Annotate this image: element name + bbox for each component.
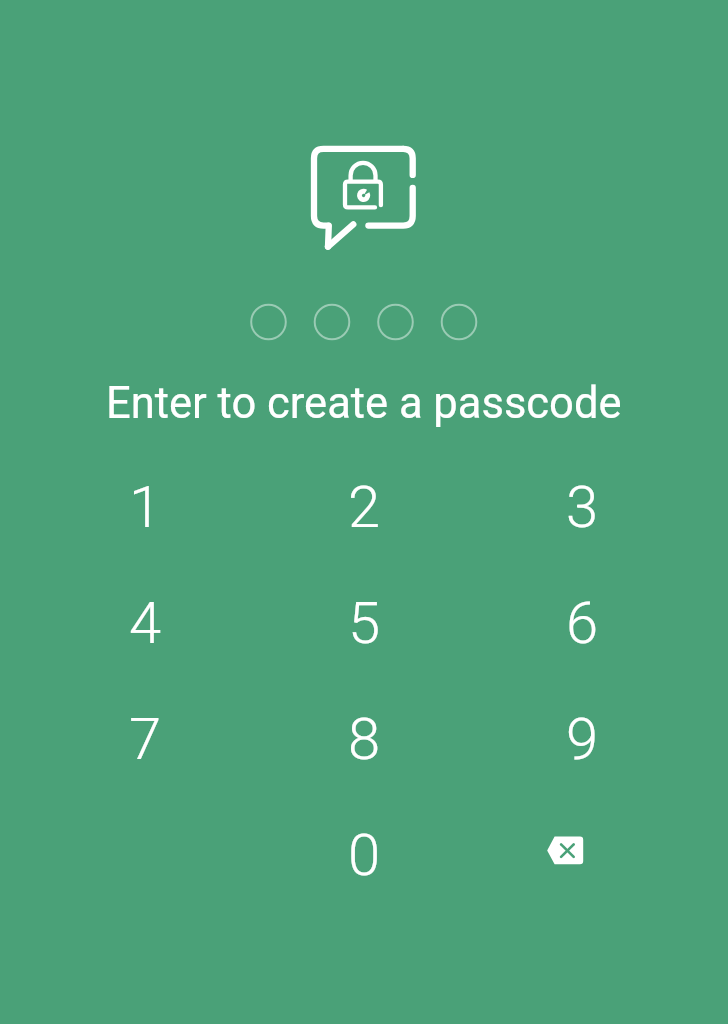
button[interactable]: Delete last digit (524, 809, 640, 901)
staticText: 0 (348, 821, 381, 889)
button[interactable]: 9 (524, 693, 640, 785)
button[interactable]: 3 (524, 461, 640, 553)
staticText: 3 (566, 473, 599, 541)
button[interactable]: 4 (87, 577, 203, 669)
staticText: 4 (129, 589, 162, 657)
button[interactable]: 8 (306, 693, 422, 785)
staticText: 2 (348, 473, 381, 541)
staticText: 6 (566, 589, 599, 657)
button[interactable]: 2 (306, 461, 422, 553)
button[interactable]: 7 (87, 693, 203, 785)
staticText: 7 (129, 705, 162, 773)
button[interactable]: 6 (524, 577, 640, 669)
staticText: Enter to create a passcode (106, 378, 622, 429)
button[interactable]: 0 (306, 809, 422, 901)
button[interactable]: 5 (306, 577, 422, 669)
staticText: 8 (348, 705, 381, 773)
staticText: 5 (348, 589, 381, 657)
staticText: 1 (129, 473, 162, 541)
staticText: 9 (566, 705, 599, 773)
button[interactable]: 1 (87, 461, 203, 553)
